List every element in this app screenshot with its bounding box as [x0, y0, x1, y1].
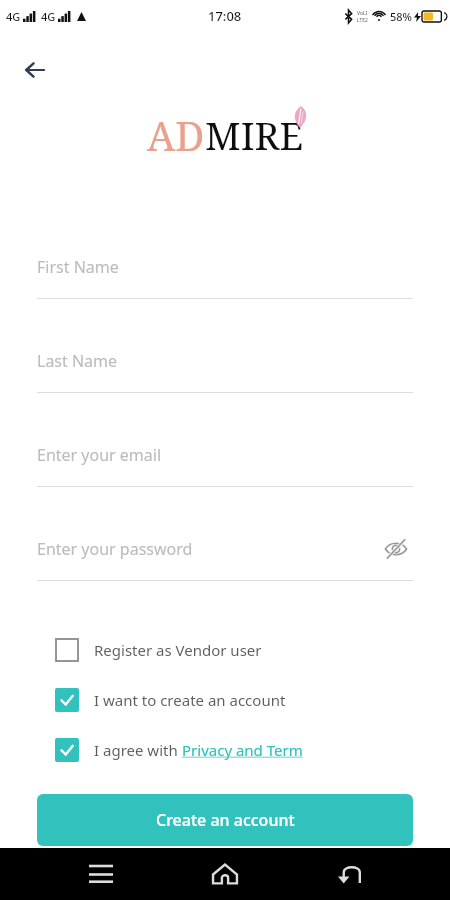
button[interactable]: Last Name [37, 330, 413, 424]
button[interactable]: I want to create an account [37, 688, 413, 712]
staticText: I want to create an account [94, 690, 286, 710]
button[interactable]: Enter your email [37, 424, 413, 518]
staticText: Create an account [156, 809, 295, 831]
staticText: Enter your email [37, 444, 162, 466]
button[interactable]: Create an account [37, 794, 413, 846]
button[interactable]: First Name [37, 236, 413, 330]
button[interactable]: Register as Vendor user [37, 638, 413, 662]
staticText: 4G [41, 9, 56, 24]
button[interactable]: Back [14, 50, 54, 90]
staticText: VoLI [357, 10, 368, 17]
staticText: I agree with [94, 740, 182, 760]
button[interactable]: I agree with [37, 738, 413, 762]
staticText: First Name [37, 256, 119, 278]
button[interactable]: Home [202, 851, 248, 897]
staticText: Last Name [37, 350, 118, 372]
button[interactable]: Enter your password [37, 518, 413, 612]
button[interactable]: Back [326, 851, 372, 897]
staticText: MIRE [205, 109, 304, 161]
staticText: LTE2 [357, 17, 368, 24]
staticText: AD [147, 108, 205, 162]
staticText: 58% [390, 9, 412, 24]
button[interactable]: Privacy and Term [182, 740, 303, 760]
staticText: 4G [6, 9, 21, 24]
button[interactable]: Show password [379, 532, 413, 566]
button[interactable]: Recent apps [78, 851, 124, 897]
staticText: Register as Vendor user [94, 640, 262, 660]
staticText: 17:08 [208, 7, 242, 25]
staticText: Enter your password [37, 538, 193, 560]
